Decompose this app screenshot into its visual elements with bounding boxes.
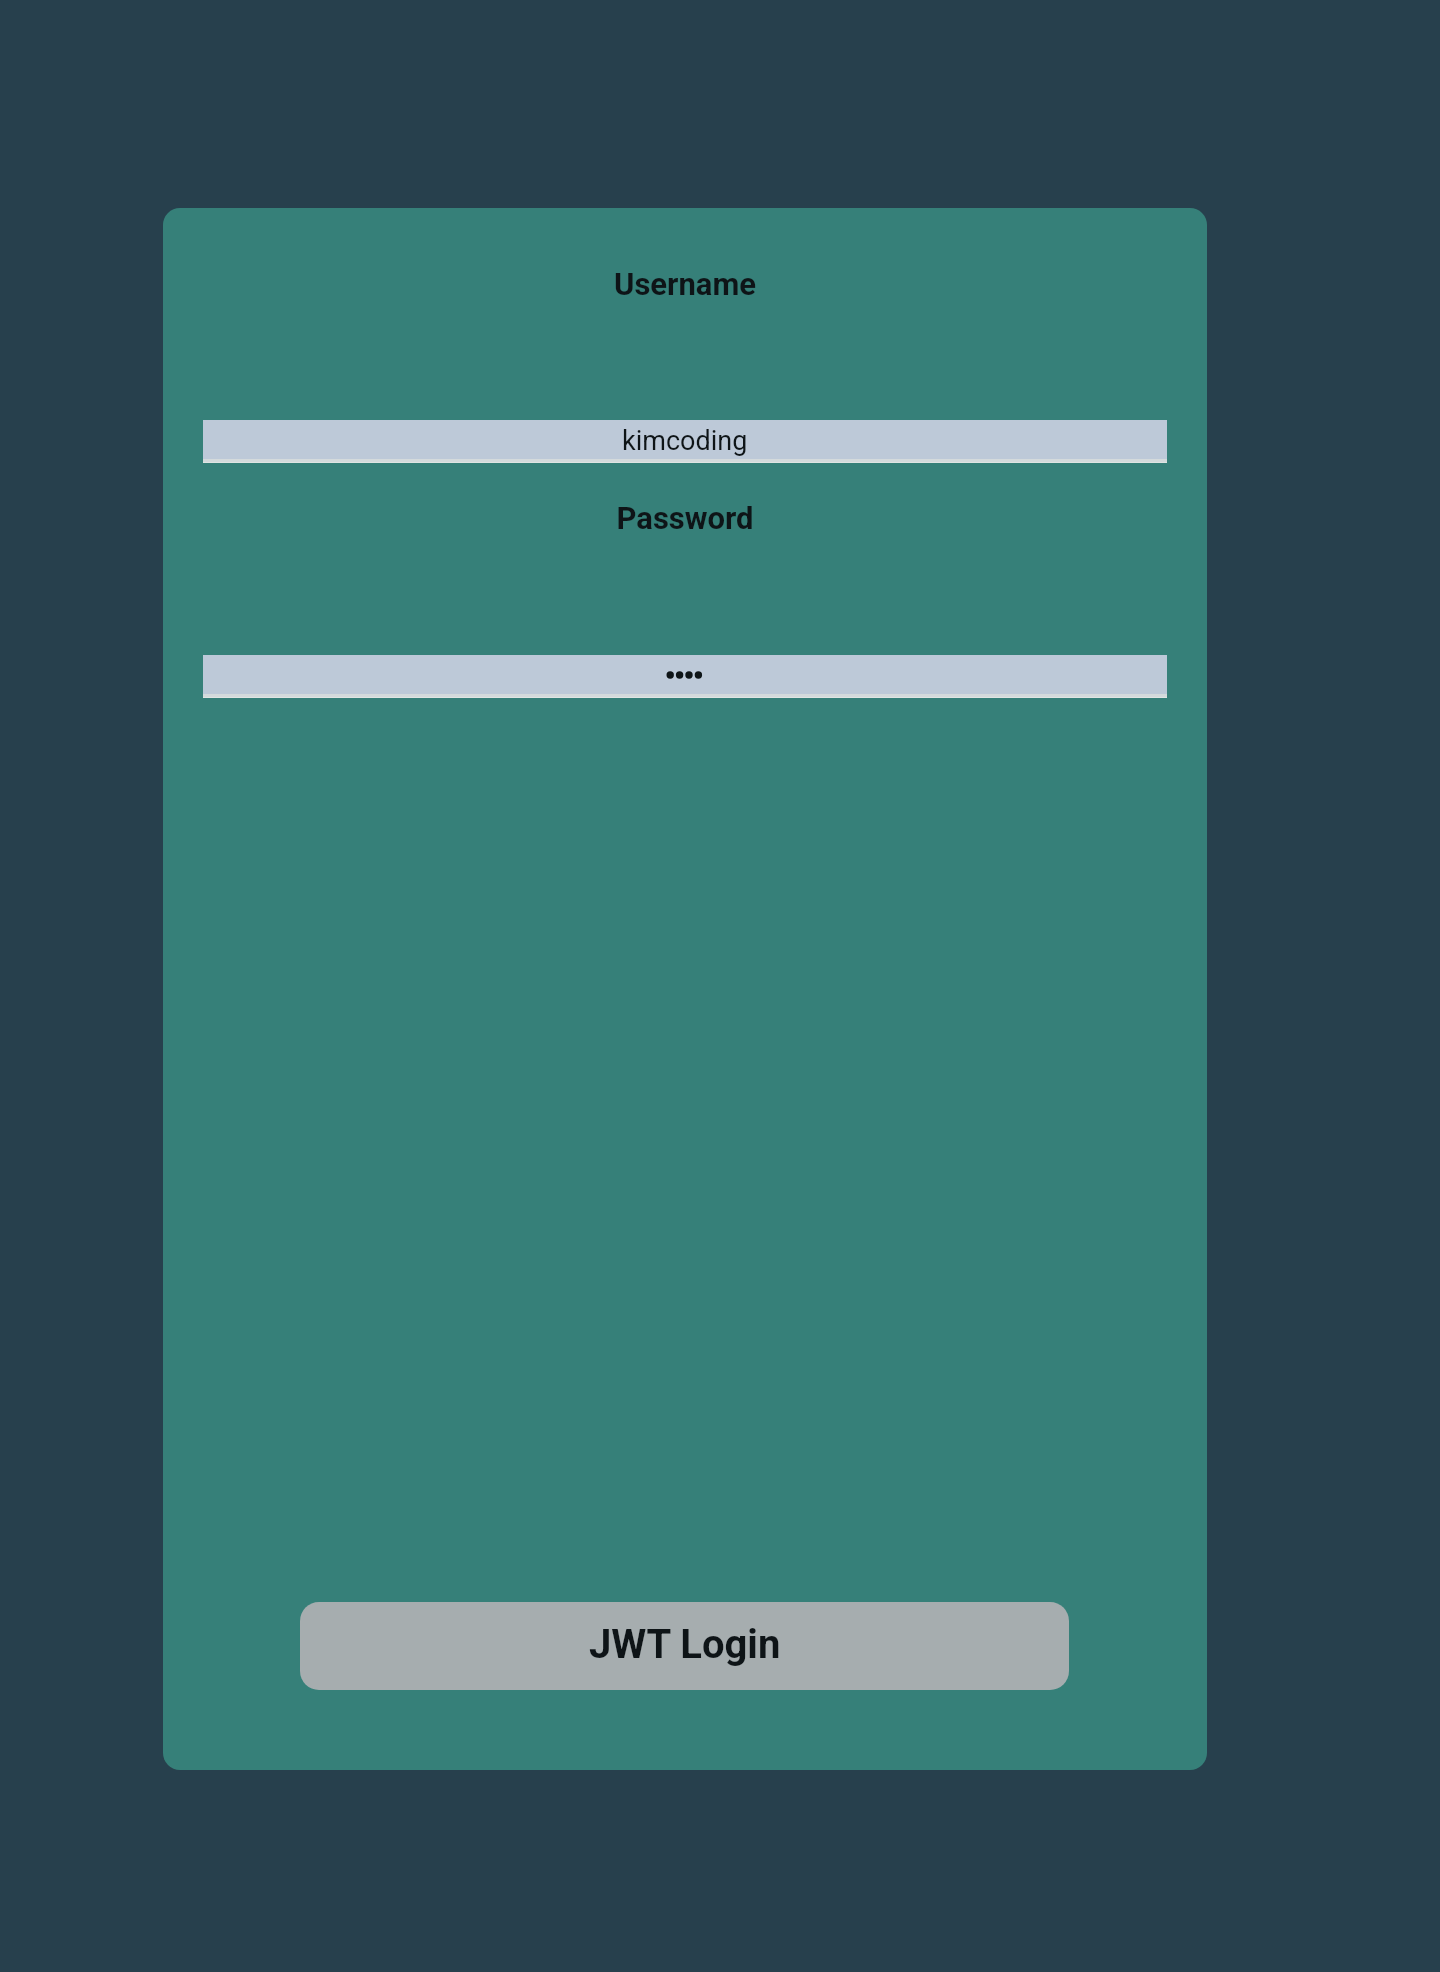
staticText: kimcoding [622,425,748,457]
staticText: Username [163,266,1207,302]
staticText: JWT Login [589,1621,781,1668]
staticText: Password [163,500,1207,536]
button[interactable]: Username field [203,420,1167,463]
button[interactable]: Password field [203,655,1167,698]
button[interactable]: JWT Login [300,1602,1069,1690]
